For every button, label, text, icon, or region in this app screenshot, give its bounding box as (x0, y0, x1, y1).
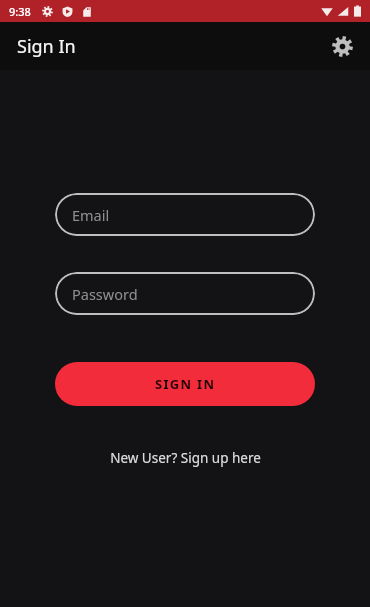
staticText: SIGN IN (155, 375, 216, 393)
staticText: Sign In (17, 34, 76, 59)
button[interactable]: New User? Sign up here (100, 444, 271, 472)
button[interactable]: Settings (323, 27, 361, 65)
button[interactable]: Email (55, 193, 315, 236)
staticText: Email (72, 205, 110, 225)
button[interactable]: Password (55, 272, 315, 315)
staticText: Password (72, 284, 138, 304)
button[interactable]: SIGN IN (55, 362, 315, 406)
staticText: 9:38 (9, 4, 31, 19)
